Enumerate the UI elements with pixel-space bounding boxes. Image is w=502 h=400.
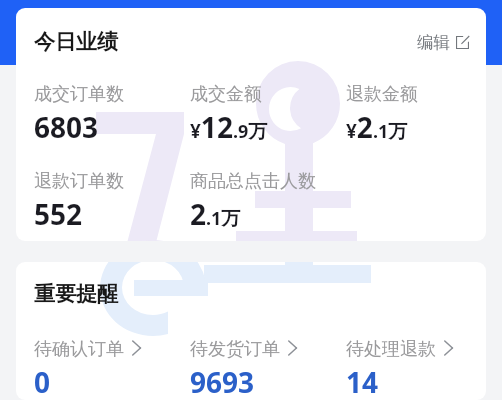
button[interactable]: 编辑 [417,32,469,53]
staticText: 成交订单数 [34,83,124,106]
staticText: 待处理退款 [346,338,436,361]
staticText: 退款金额 [346,83,418,106]
button[interactable]: 待处理退款 [346,338,502,400]
staticText: 待发货订单 [190,338,280,361]
staticText: 商品总点击人数 [190,170,316,193]
staticText: 成交金额 [190,83,262,106]
staticText: 9693 [190,363,255,400]
staticText: 重要提醒 [34,281,118,307]
staticText: 0 [34,363,51,400]
staticText: 14 [346,363,379,400]
other: 编辑 [456,36,469,49]
staticText: ¥12.9万 [190,108,268,146]
staticText: 552 [34,195,83,233]
staticText: 退款订单数 [34,170,124,193]
button[interactable]: 待发货订单 [190,338,346,400]
staticText: 2.1万 [190,195,241,233]
staticText: 编辑 [417,32,450,53]
staticText: ¥2.1万 [346,108,408,146]
staticText: 待确认订单 [34,338,124,361]
staticText: 今日业绩 [34,29,118,55]
staticText: 6803 [34,108,99,146]
button[interactable]: 待确认订单 [34,338,190,400]
